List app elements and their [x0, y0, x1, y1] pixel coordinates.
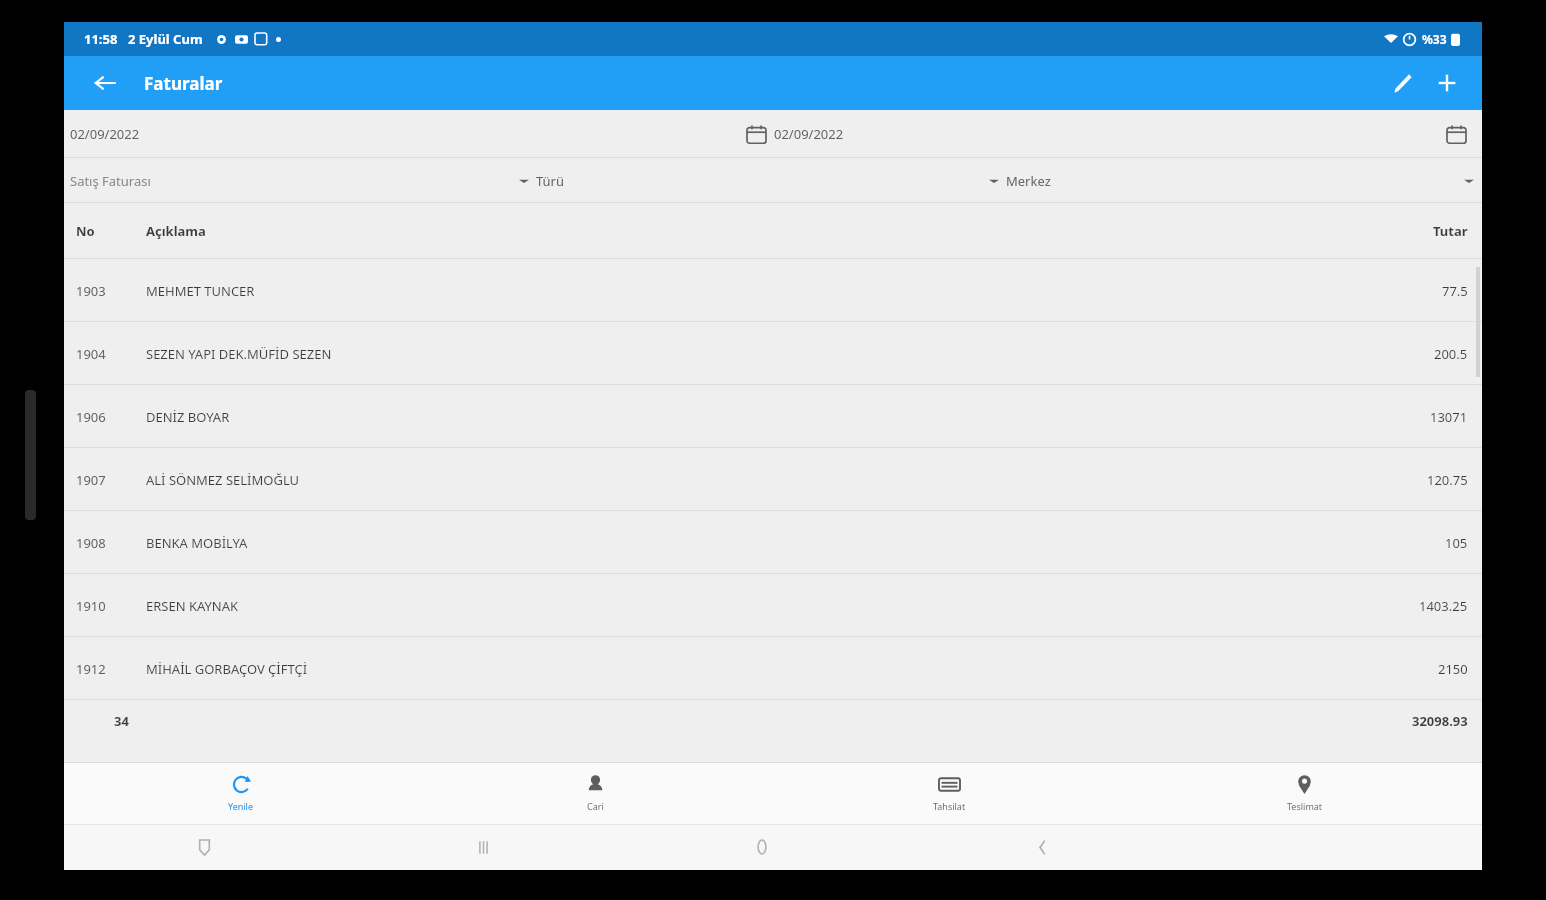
button[interactable]: 1910	[64, 574, 1482, 637]
staticText: 02/09/2022	[774, 125, 844, 143]
button[interactable]: Türü	[536, 172, 565, 190]
button[interactable]: 1908	[64, 511, 1482, 574]
staticText: SEZEN YAPI DEK.MÜFİD SEZEN	[146, 345, 332, 363]
staticText: ERSEN KAYNAK	[146, 597, 239, 615]
staticText: MİHAİL GORBAÇOV ÇİFTÇİ	[146, 660, 308, 678]
staticText: Teslimat	[1287, 800, 1323, 812]
staticText: 1906	[76, 408, 106, 426]
button[interactable]: Back	[1024, 829, 1060, 865]
staticText: 1908	[76, 534, 106, 552]
staticText: 1903	[76, 282, 106, 300]
staticText: 02/09/2022	[70, 125, 140, 143]
staticText: 1403.25	[1419, 597, 1468, 615]
button[interactable]: Back	[82, 61, 126, 105]
staticText: 1907	[76, 471, 106, 489]
button[interactable]: Edit	[1378, 60, 1424, 106]
button[interactable]: Hide keyboard	[186, 829, 222, 865]
staticText: 200.5	[1434, 345, 1468, 363]
button[interactable]: 1906	[64, 385, 1482, 448]
staticText: Tahsilat	[933, 800, 966, 812]
button[interactable]: Recent apps	[465, 829, 501, 865]
staticText: Faturalar	[144, 72, 223, 95]
button[interactable]: Merkez	[1006, 172, 1051, 190]
staticText: Açıklama	[146, 222, 206, 240]
staticText: Cari	[587, 800, 604, 812]
staticText: 1910	[76, 597, 106, 615]
button[interactable]: Pick start date	[736, 114, 776, 154]
staticText: 13071	[1430, 408, 1468, 426]
staticText: 105	[1445, 534, 1468, 552]
staticText: MEHMET TUNCER	[146, 282, 255, 300]
staticText: 2 Eylül Cum	[128, 30, 203, 48]
staticText: %33	[1422, 31, 1447, 47]
staticText: 2150	[1438, 660, 1468, 678]
button[interactable]: Cari	[418, 762, 772, 824]
button[interactable]: Yenile	[64, 762, 418, 824]
button[interactable]: Tahsilat	[772, 762, 1127, 824]
button[interactable]: Teslimat	[1127, 762, 1482, 824]
staticText: 1904	[76, 345, 106, 363]
button[interactable]: Pick end date	[1436, 114, 1476, 154]
staticText: BENKA MOBİLYA	[146, 534, 248, 552]
staticText: 1912	[76, 660, 106, 678]
button[interactable]: 1907	[64, 448, 1482, 511]
button[interactable]: 1904	[64, 322, 1482, 385]
staticText: 120.75	[1427, 471, 1468, 489]
staticText: 34	[114, 712, 129, 730]
staticText: No	[76, 222, 95, 240]
staticText: 77.5	[1442, 282, 1468, 300]
button[interactable]: 1903	[64, 259, 1482, 322]
staticText: ALİ SÖNMEZ SELİMOĞLU	[146, 471, 300, 489]
button[interactable]: Home	[744, 829, 780, 865]
staticText: DENİZ BOYAR	[146, 408, 230, 426]
button[interactable]: Add	[1424, 60, 1470, 106]
staticText: 11:58	[84, 30, 118, 48]
staticText: Tutar	[1433, 222, 1468, 240]
staticText: 32098.93	[1412, 712, 1468, 730]
button[interactable]: 1912	[64, 637, 1482, 700]
staticText: Yenile	[228, 800, 254, 812]
button[interactable]: Satış Faturası	[70, 172, 151, 190]
